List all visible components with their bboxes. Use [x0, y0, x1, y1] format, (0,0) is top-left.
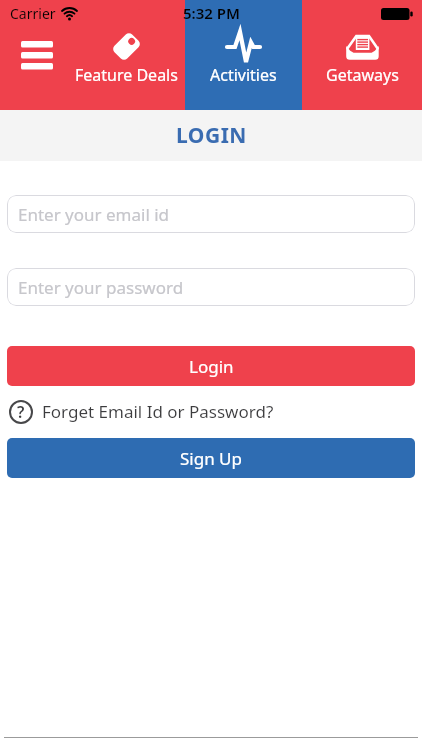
- staticText: Activities: [210, 64, 277, 86]
- button[interactable]: Login: [7, 346, 415, 386]
- staticText: Enter your password: [18, 276, 184, 299]
- button[interactable]: Activities: [185, 0, 302, 110]
- button[interactable]: Getaways: [302, 0, 422, 110]
- staticText: Login: [189, 355, 234, 378]
- staticText: Feature Deals: [75, 64, 178, 86]
- staticText: Getaways: [326, 64, 399, 86]
- button[interactable]: Enter your email id: [7, 195, 415, 233]
- staticText: Forget Email Id or Password?: [42, 400, 274, 423]
- staticText: 5:32 PM: [183, 3, 240, 23]
- staticText: Sign Up: [180, 447, 242, 470]
- staticText: Enter your email id: [18, 203, 170, 226]
- staticText: LOGIN: [176, 121, 247, 150]
- button[interactable]: Feature Deals: [67, 0, 185, 110]
- button[interactable]: Enter your password: [7, 268, 415, 306]
- staticText: Carrier: [10, 4, 56, 23]
- button[interactable]: ?: [9, 398, 413, 425]
- button[interactable]: [0, 0, 67, 110]
- staticText: ?: [17, 401, 25, 423]
- button[interactable]: Sign Up: [7, 438, 415, 478]
